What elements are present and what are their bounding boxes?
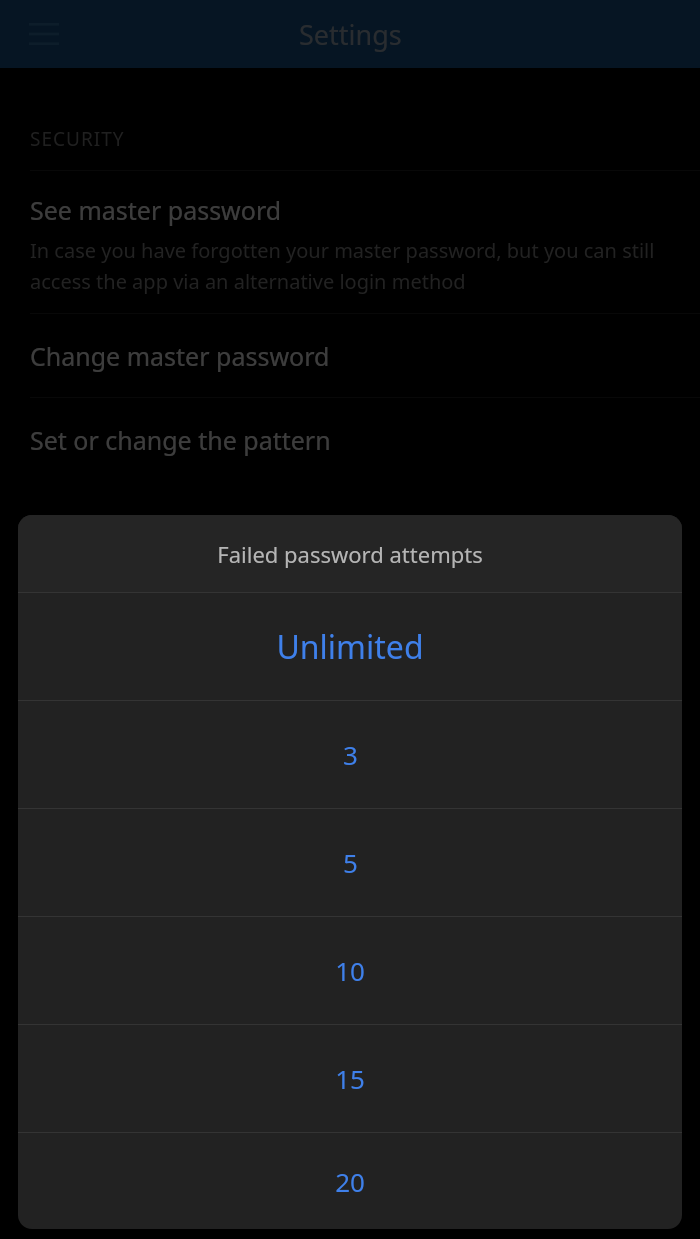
staticText: 3 (343, 737, 358, 772)
staticText: Set or change the pattern (30, 423, 331, 457)
staticText: See master password (30, 193, 282, 227)
button[interactable]: See master password (0, 171, 700, 313)
staticText: 15 (335, 1061, 365, 1096)
button[interactable]: 20 (18, 1133, 682, 1229)
button[interactable]: 15 (18, 1025, 682, 1132)
staticText: SECURITY (30, 126, 125, 152)
staticText: Failed password attempts (217, 539, 483, 569)
staticText: 10 (335, 953, 365, 988)
button[interactable]: 5 (18, 809, 682, 916)
staticText: 20 (335, 1164, 365, 1199)
button[interactable]: Set or change the pattern (0, 398, 700, 481)
button[interactable]: 3 (18, 701, 682, 808)
button[interactable]: 10 (18, 917, 682, 1024)
button[interactable]: Change master password (0, 314, 700, 397)
staticText: Unlimited (276, 625, 424, 669)
button[interactable]: Unlimited (18, 593, 682, 700)
staticText: 5 (343, 845, 358, 880)
staticText: In case you have forgotten your master p… (30, 237, 676, 295)
staticText: Change master password (30, 339, 330, 373)
staticText: Settings (299, 16, 402, 53)
